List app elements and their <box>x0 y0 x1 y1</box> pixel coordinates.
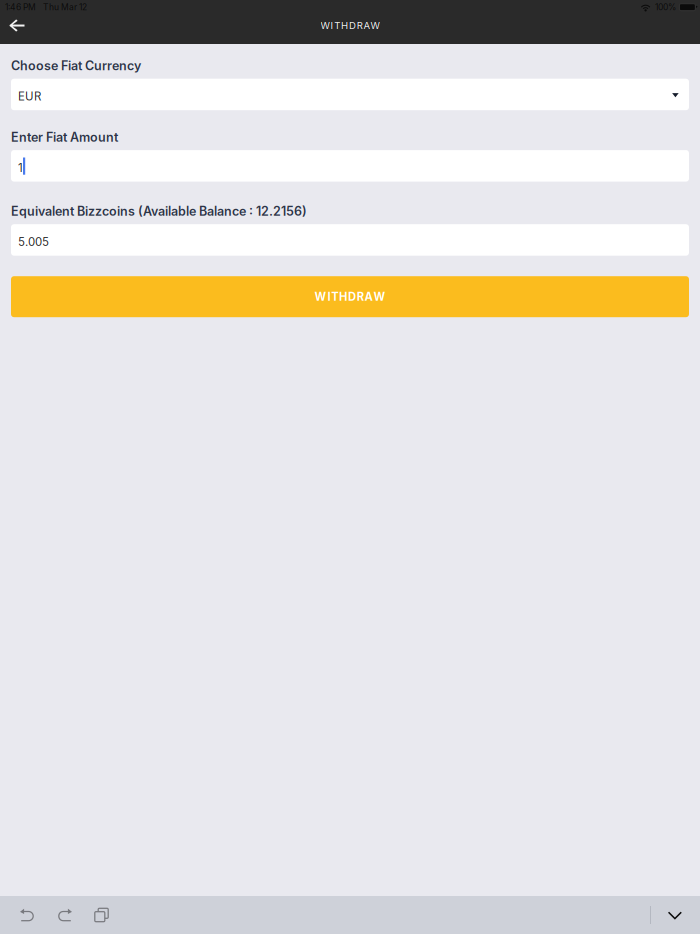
staticText: Choose Fiat Currency <box>11 58 141 73</box>
staticText: Thu Mar 12 <box>43 2 87 12</box>
staticText: 1:46 PM <box>5 2 36 12</box>
staticText: WITHDRAW <box>320 20 379 31</box>
staticText: WITHDRAW <box>314 290 385 303</box>
staticText: 1 <box>18 161 23 175</box>
staticText: 100% <box>655 2 676 12</box>
button[interactable]: Hide keyboard <box>651 896 699 934</box>
button[interactable]: 1 <box>0 150 700 182</box>
button[interactable]: 5.005 <box>0 224 700 256</box>
staticText: Equivalent Bizzcoins (Available Balance … <box>11 204 307 219</box>
button[interactable]: Undo <box>9 896 46 934</box>
staticText: EUR <box>18 89 41 103</box>
staticText: 5.005 <box>18 235 49 249</box>
button[interactable]: EUR <box>0 79 700 110</box>
button[interactable]: WITHDRAW <box>0 276 700 317</box>
staticText: Enter Fiat Amount <box>11 130 118 145</box>
button[interactable]: Back <box>0 18 42 33</box>
button[interactable]: Redo <box>46 896 83 934</box>
button[interactable]: Copy <box>83 896 120 934</box>
